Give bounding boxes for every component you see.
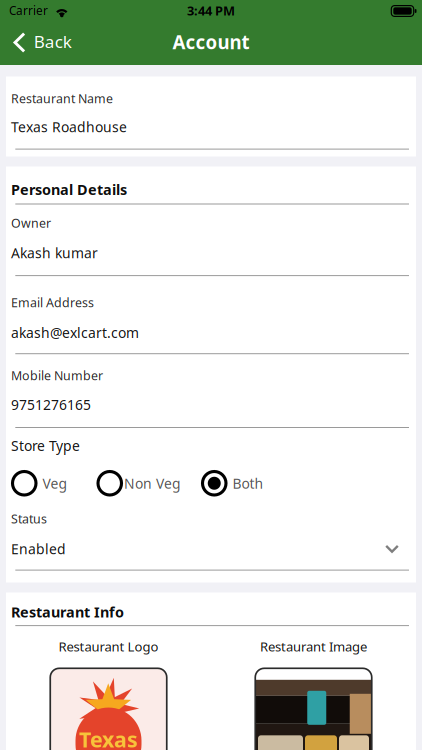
staticText: Restaurant Image — [260, 638, 367, 655]
staticText: Non Veg — [124, 474, 181, 493]
staticText: 3:44 PM — [187, 2, 235, 19]
staticText: Back — [34, 30, 72, 53]
staticText: Enabled — [11, 539, 66, 558]
button[interactable]: Back — [0, 22, 86, 65]
staticText: 9751276165 — [11, 395, 91, 414]
staticText: Both — [232, 474, 263, 493]
staticText: Mobile Number — [11, 367, 103, 384]
button[interactable]: Both — [201, 470, 263, 497]
staticText: Akash kumar — [11, 243, 98, 262]
staticText: Texas Roadhouse — [11, 117, 127, 136]
staticText: Veg — [42, 474, 67, 493]
staticText: Store Type — [11, 436, 80, 455]
staticText: Restaurant Logo — [58, 638, 158, 655]
staticText: Texas — [79, 725, 138, 750]
staticText: Account — [172, 29, 249, 55]
button[interactable]: Veg — [11, 470, 67, 497]
button[interactable]: Enabled — [11, 541, 416, 556]
staticText: Carrier — [9, 2, 48, 18]
staticText: Personal Details — [11, 180, 127, 199]
button[interactable]: Non Veg — [96, 470, 181, 497]
staticText: Email Address — [11, 294, 94, 311]
staticText: Status — [11, 510, 47, 527]
staticText: Owner — [11, 214, 51, 231]
staticText: Restaurant Name — [11, 90, 113, 107]
staticText: Restaurant Info — [11, 602, 124, 622]
staticText: akash@exlcart.com — [11, 323, 139, 342]
